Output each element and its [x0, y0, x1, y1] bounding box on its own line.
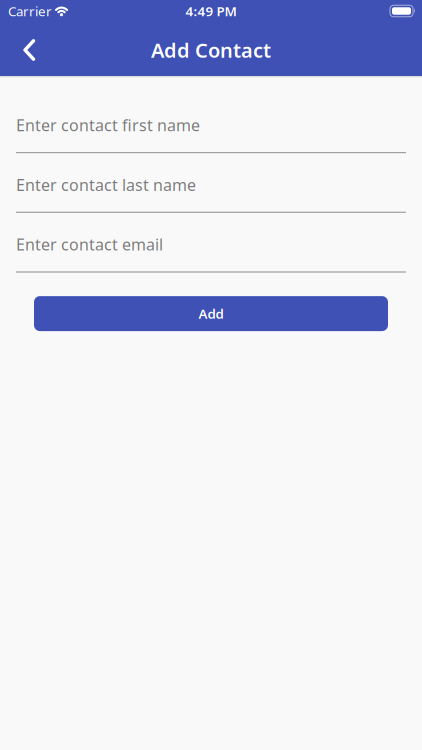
staticText: 4:49 PM	[185, 2, 236, 20]
textField[interactable]: Enter contact email	[0, 217, 422, 273]
staticText: Add Contact	[151, 37, 271, 63]
textField[interactable]: Enter contact first name	[0, 98, 422, 153]
staticText: Enter contact last name	[16, 174, 196, 195]
button[interactable]: Add	[34, 296, 388, 331]
button[interactable]: Back	[0, 24, 48, 76]
staticText: Enter contact email	[16, 234, 163, 255]
staticText: Add	[198, 305, 223, 322]
textField[interactable]: Enter contact last name	[0, 158, 422, 213]
staticText: Enter contact first name	[16, 114, 200, 136]
staticText: Carrier	[8, 2, 52, 20]
